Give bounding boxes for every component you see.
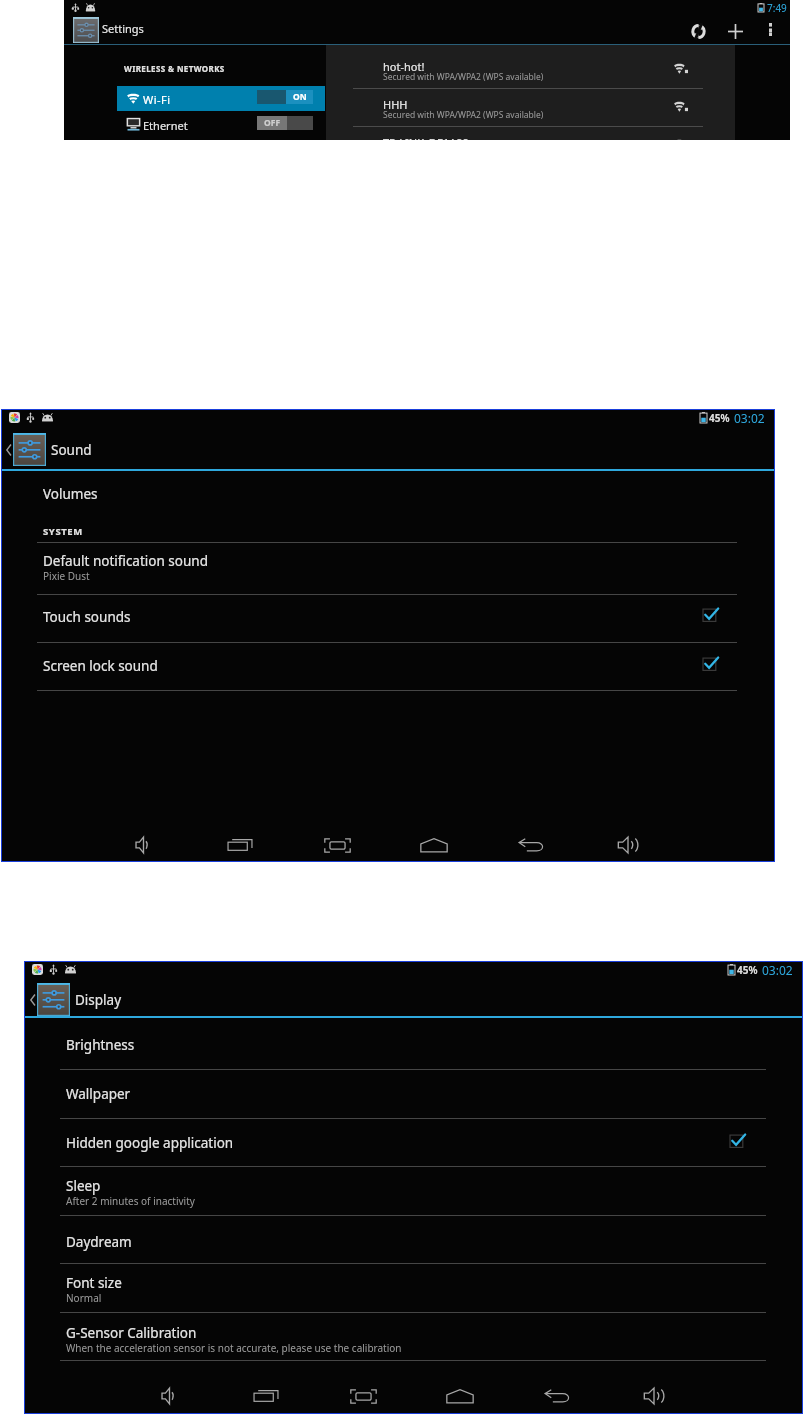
staticText: Normal — [66, 1291, 102, 1305]
button[interactable]: Recents — [245, 1381, 287, 1411]
button[interactable]: ON — [257, 90, 313, 104]
button[interactable]: Wi-Fi — [117, 86, 325, 111]
button[interactable]: Screenshot — [342, 1381, 384, 1411]
staticText: Pixie Dust — [43, 569, 90, 583]
button[interactable]: Brightness — [24, 1020, 803, 1068]
button[interactable]: TP-LINK_DE1A90 — [326, 126, 735, 140]
staticText: Screen lock sound — [43, 657, 158, 675]
button[interactable]: Volume down — [122, 830, 164, 860]
button[interactable]: Settings — [24, 961, 803, 1019]
button[interactable]: Volume up — [633, 1381, 675, 1411]
staticText: TP-LINK_DE1A90 — [383, 135, 469, 140]
button[interactable]: Add network — [721, 17, 749, 45]
staticText: Default notification sound — [43, 552, 208, 570]
staticText: Touch sounds — [43, 608, 131, 626]
button[interactable]: More options — [758, 17, 782, 41]
staticText: 03:02 — [762, 962, 793, 977]
button[interactable]: Settings — [13, 433, 46, 466]
button[interactable]: Default notification sound — [1, 536, 775, 584]
button[interactable]: Settings — [73, 17, 99, 43]
button[interactable]: Home — [439, 1381, 481, 1411]
staticText: HHH — [383, 97, 408, 112]
button[interactable]: Wallpaper — [24, 1069, 803, 1117]
staticText: 03:02 — [734, 410, 765, 425]
staticText: Sleep — [66, 1177, 101, 1195]
staticText: Settings — [102, 21, 144, 36]
staticText: Daydream — [66, 1233, 132, 1251]
staticText: ON — [293, 91, 307, 103]
button[interactable]: Home — [413, 830, 455, 860]
staticText: Volumes — [43, 485, 98, 503]
staticText: Brightness — [66, 1036, 135, 1054]
staticText: Ethernet — [143, 118, 188, 133]
button[interactable]: WPS scan — [684, 17, 712, 45]
staticText: Wallpaper — [66, 1085, 131, 1103]
button[interactable]: Ethernet — [117, 112, 325, 137]
button[interactable]: Volume down — [148, 1381, 190, 1411]
button[interactable]: Daydream — [24, 1217, 803, 1265]
staticText: Sound — [51, 441, 92, 459]
button[interactable]: Hidden google application — [24, 1118, 803, 1166]
staticText: 7:49 — [767, 1, 787, 14]
button[interactable]: Screen lock sound — [1, 641, 775, 689]
button[interactable]: Touch sounds — [1, 592, 775, 640]
button[interactable]: Back — [536, 1381, 578, 1411]
button[interactable]: G-Sensor Calibration — [24, 1308, 803, 1356]
button[interactable]: Screenshot — [316, 830, 358, 860]
button[interactable]: Settings — [1, 409, 775, 467]
button[interactable]: OFF — [257, 116, 313, 130]
staticText: Secured with WPA/WPA2 (WPS available) — [383, 71, 544, 83]
button[interactable]: Recents — [219, 830, 261, 860]
staticText: SYSTEM — [43, 525, 83, 538]
button[interactable]: Sleep — [24, 1161, 803, 1209]
button[interactable]: Font size — [24, 1258, 803, 1306]
button[interactable]: Volume up — [607, 830, 649, 860]
button[interactable]: hot-hot! — [326, 50, 735, 87]
staticText: Display — [75, 991, 122, 1009]
staticText: When the acceleration sensor is not accu… — [66, 1341, 402, 1355]
button[interactable]: HHH — [326, 88, 735, 125]
staticText: After 2 minutes of inactivity — [66, 1194, 195, 1208]
staticText: WIRELESS & NETWORKS — [124, 63, 225, 74]
staticText: 45% — [737, 963, 758, 977]
staticText: hot-hot! — [383, 59, 425, 74]
button[interactable]: Volumes — [1, 469, 775, 517]
button[interactable]: Settings — [37, 983, 70, 1016]
staticText: Wi-Fi — [143, 92, 171, 107]
staticText: 45% — [709, 411, 730, 425]
staticText: G-Sensor Calibration — [66, 1324, 197, 1342]
staticText: Hidden google application — [66, 1134, 234, 1152]
staticText: Secured with WPA/WPA2 (WPS available) — [383, 109, 544, 121]
button[interactable]: Back — [510, 830, 552, 860]
staticText: Font size — [66, 1274, 122, 1292]
staticText: OFF — [264, 117, 281, 129]
